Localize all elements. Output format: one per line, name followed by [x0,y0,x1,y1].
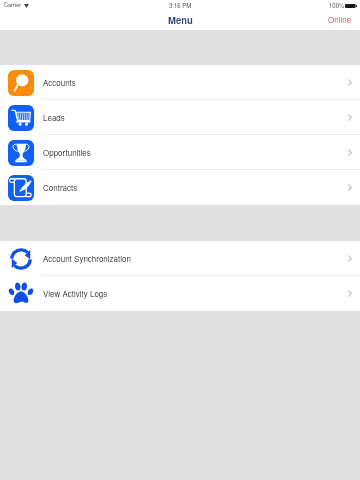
button[interactable]: View Activity Logs [0,276,360,311]
staticText: 100% [329,1,345,10]
staticText: Contracts [43,182,78,193]
button[interactable]: Leads [0,100,360,135]
staticText: View Activity Logs [43,288,108,299]
button[interactable]: Account Synchronization [0,241,360,276]
staticText: Menu [168,13,193,27]
button[interactable]: Contracts [0,170,360,205]
staticText: Account Synchronization [43,253,131,264]
staticText: Leads [43,112,65,123]
staticText: Accounts [43,77,76,88]
staticText: Carrier [4,1,21,9]
staticText: Online [328,14,352,25]
button[interactable]: Online [320,0,360,29]
button[interactable]: Accounts [0,65,360,100]
button[interactable]: Opportunities [0,135,360,170]
staticText: Opportunities [43,147,91,158]
staticText: 3:16 PM [169,1,192,10]
